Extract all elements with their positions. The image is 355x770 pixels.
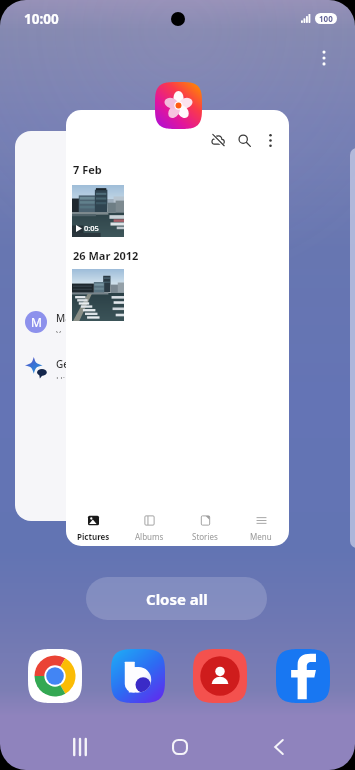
button[interactable]: Recent apps	[66, 733, 94, 761]
button[interactable]: Back	[265, 733, 293, 761]
staticText: M	[31, 314, 42, 330]
button[interactable]: Home	[166, 733, 194, 761]
staticText: Hi,	[56, 374, 68, 379]
button[interactable]: Chrome	[28, 649, 82, 703]
button[interactable]: Menu	[233, 515, 289, 542]
button[interactable]: Close all	[86, 577, 267, 620]
button[interactable]: More options	[257, 127, 283, 153]
staticText: 0:05	[84, 223, 99, 233]
button[interactable]	[350, 148, 355, 548]
staticText: Stories	[192, 531, 218, 542]
staticText: Ma	[56, 311, 71, 325]
button[interactable]	[72, 269, 124, 321]
staticText: Albums	[135, 531, 164, 542]
button[interactable]: Pictures	[66, 515, 121, 542]
staticText: Close all	[146, 589, 208, 609]
staticText: 26 Mar 2012	[73, 248, 139, 263]
staticText: Ge	[56, 357, 70, 371]
button[interactable]: Facebook	[276, 649, 330, 703]
button[interactable]: Cloud off	[205, 127, 231, 153]
button[interactable]: M	[15, 131, 127, 521]
button[interactable]: Albums	[121, 515, 177, 542]
button[interactable]: Contacts	[193, 649, 247, 703]
staticText: Menu	[250, 531, 272, 542]
staticText: 7 Feb	[73, 162, 102, 177]
button[interactable]: 0:05	[72, 185, 124, 237]
button[interactable]: Cloud off	[66, 110, 289, 546]
button[interactable]: More options	[311, 45, 337, 71]
staticText: 10:00	[24, 10, 59, 28]
button[interactable]: Bixby	[111, 649, 165, 703]
staticText: Pictures	[77, 531, 110, 542]
button[interactable]: Search	[231, 127, 257, 153]
staticText: 100	[319, 13, 333, 24]
staticText: Yo	[56, 328, 67, 333]
button[interactable]: Stories	[177, 515, 233, 542]
